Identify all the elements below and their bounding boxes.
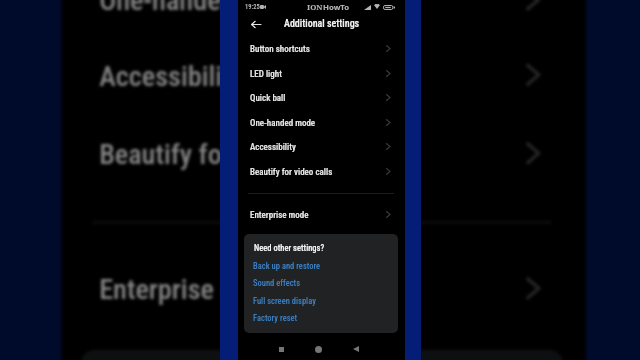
staticText: Beautify for video calls <box>99 139 360 174</box>
button[interactable]: Enterprise mode <box>61 252 586 328</box>
staticText: 19:25 <box>245 3 260 11</box>
staticText: Sound effects <box>253 278 301 288</box>
button[interactable]: Accessibility <box>238 135 405 159</box>
staticText: One-handed mode <box>99 0 306 20</box>
button[interactable]: Enterprise mode <box>238 203 405 227</box>
button[interactable]: Quick ball <box>238 86 405 110</box>
staticText: Need other settings? <box>254 243 325 253</box>
button[interactable]: Back up and restore <box>244 257 398 274</box>
staticText: Accessibility <box>250 142 296 153</box>
button[interactable]: Back <box>348 341 364 357</box>
button[interactable]: Button shortcuts <box>238 37 405 61</box>
button[interactable]: Home <box>310 341 326 357</box>
button[interactable]: LED light <box>238 62 405 86</box>
staticText: Enterprise mode <box>250 210 309 221</box>
staticText: HowTo <box>323 2 350 13</box>
staticText: Accessibility <box>99 61 243 95</box>
button[interactable]: One-handed mode <box>61 0 586 39</box>
staticText: Enterprise mode <box>99 274 284 309</box>
button[interactable]: Recent apps <box>273 341 289 357</box>
button[interactable]: Sound effects <box>244 274 398 291</box>
staticText: Additional settings <box>284 18 360 30</box>
staticText: One-handed mode <box>250 118 316 129</box>
staticText: Button shortcuts <box>250 44 310 55</box>
button[interactable]: Factory reset <box>244 309 398 326</box>
button[interactable]: Beautify for video calls <box>238 160 405 184</box>
staticText: Full screen display <box>253 296 316 306</box>
button[interactable]: Full screen display <box>244 292 398 309</box>
button[interactable]: Accessibility <box>61 39 586 114</box>
button[interactable]: One-handed mode <box>238 111 405 135</box>
staticText: Factory reset <box>253 313 298 323</box>
staticText: Quick ball <box>250 93 286 104</box>
button[interactable]: Back <box>247 15 265 33</box>
staticText: ION <box>307 2 323 13</box>
staticText: LED light <box>250 69 282 80</box>
staticText: Back up and restore <box>253 261 321 271</box>
staticText: Beautify for video calls <box>250 167 333 178</box>
button[interactable]: Beautify for video calls <box>61 117 586 193</box>
